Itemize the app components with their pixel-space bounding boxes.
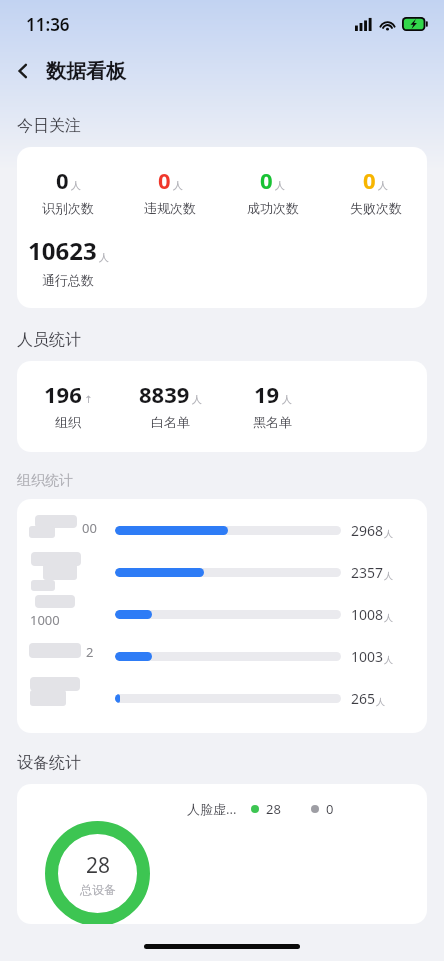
button[interactable]: 196 xyxy=(17,361,427,452)
staticText: 成功次数 xyxy=(247,200,299,216)
staticText: ↑ xyxy=(84,394,93,406)
staticText: 人 xyxy=(378,179,388,192)
staticText: 28 xyxy=(86,851,111,880)
staticText: 人 xyxy=(173,179,183,192)
staticText: 2 xyxy=(86,643,94,661)
staticText: 0 xyxy=(363,165,376,195)
staticText: 1000 xyxy=(30,611,60,629)
staticText: 人 xyxy=(384,528,393,539)
staticText: 196 xyxy=(44,379,82,409)
button[interactable]: 00 xyxy=(17,499,427,733)
staticText: 失败次数 xyxy=(350,200,402,216)
staticText: 1003 xyxy=(351,647,384,666)
staticText: 今日关注 xyxy=(17,116,81,136)
staticText: 0 xyxy=(158,165,171,195)
staticText: 人 xyxy=(384,570,393,581)
staticText: 人员统计 xyxy=(17,330,81,350)
staticText: 人 xyxy=(282,393,292,406)
button[interactable]: Back xyxy=(0,48,46,94)
staticText: 违规次数 xyxy=(144,200,196,216)
staticText: 人 xyxy=(384,612,393,623)
staticText: 组织 xyxy=(55,414,81,430)
staticText: 265 xyxy=(351,689,376,708)
staticText: 00 xyxy=(82,519,97,537)
staticText: 人 xyxy=(192,393,202,406)
staticText: 数据看板 xyxy=(46,59,126,84)
staticText: 组织统计 xyxy=(17,472,73,490)
staticText: 0 xyxy=(56,165,69,195)
staticText: 0 xyxy=(326,800,334,818)
staticText: 人脸虚... xyxy=(187,800,237,818)
staticText: 10623 xyxy=(28,234,97,267)
staticText: 8839 xyxy=(139,379,190,409)
staticText: 2357 xyxy=(351,563,384,582)
staticText: 通行总数 xyxy=(42,272,94,288)
button[interactable]: 0 xyxy=(17,147,427,308)
staticText: 人 xyxy=(275,179,285,192)
staticText: 0 xyxy=(260,165,273,195)
staticText: 总设备 xyxy=(80,882,116,897)
staticText: 19 xyxy=(254,379,280,409)
staticText: 28 xyxy=(266,800,281,818)
staticText: 人 xyxy=(99,251,109,264)
staticText: 人 xyxy=(384,654,393,665)
staticText: 2968 xyxy=(351,521,384,540)
staticText: 11:36 xyxy=(26,13,70,36)
staticText: 黑名单 xyxy=(253,414,292,430)
button[interactable]: 人脸虚... xyxy=(17,784,427,924)
staticText: 人 xyxy=(71,179,81,192)
staticText: 人 xyxy=(376,696,385,707)
staticText: 识别次数 xyxy=(42,200,94,216)
staticText: 1008 xyxy=(351,605,384,624)
staticText: 设备统计 xyxy=(17,753,81,773)
staticText: 白名单 xyxy=(151,414,190,430)
